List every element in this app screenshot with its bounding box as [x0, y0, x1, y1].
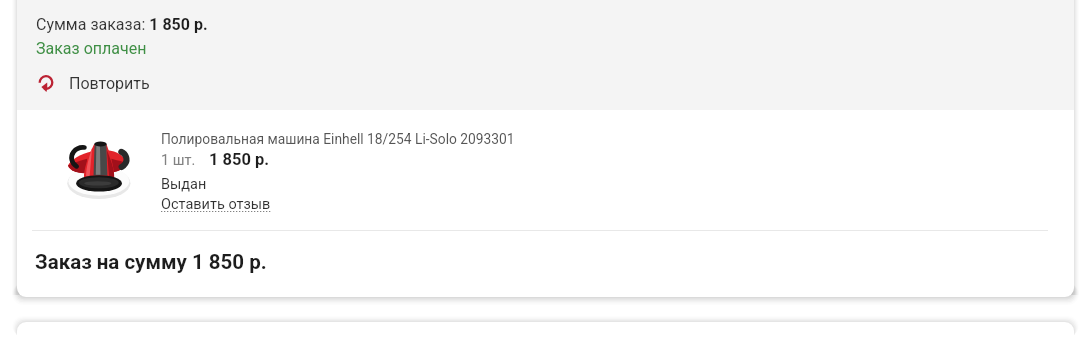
button[interactable]: Оставить отзыв — [161, 196, 271, 213]
other: Повторить — [35, 71, 57, 95]
staticText: Полировальная машина Einhell 18/254 Li-S… — [161, 131, 515, 147]
staticText: Заказ оплачен — [36, 39, 147, 58]
button[interactable]: Повторить — [35, 71, 150, 95]
button[interactable]: Заказ на сумму 1 850 р. — [35, 250, 267, 274]
button[interactable] — [17, 0, 1074, 297]
staticText: Оставить отзыв — [161, 196, 271, 213]
staticText: Выдан — [161, 176, 207, 193]
staticText: 1 850 р. — [209, 150, 270, 169]
staticText: 1 шт. — [161, 152, 196, 169]
staticText: Сумма заказа: 1 850 р. — [36, 15, 208, 34]
staticText: Повторить — [69, 74, 150, 93]
